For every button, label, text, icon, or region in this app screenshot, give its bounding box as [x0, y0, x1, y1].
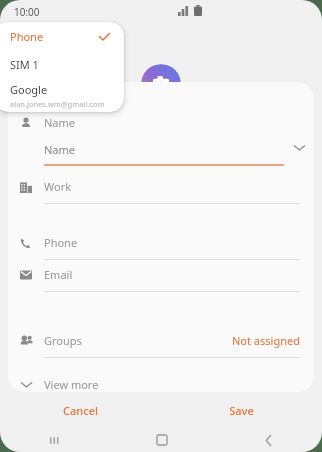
button[interactable]: Save: [161, 398, 322, 422]
staticText: Work: [44, 179, 72, 194]
button[interactable]: Home: [108, 428, 215, 452]
button[interactable]: View more: [8, 377, 314, 392]
staticText: Cancel: [63, 403, 98, 418]
staticText: Name: [44, 115, 76, 130]
button[interactable]: Email: [8, 267, 314, 297]
button[interactable]: Back: [215, 428, 322, 452]
button[interactable]: SIM 1: [0, 50, 124, 78]
staticText: Not assigned: [232, 333, 300, 348]
other: Expand name fields: [294, 144, 305, 151]
staticText: Google: [10, 82, 48, 97]
staticText: Groups: [44, 333, 82, 348]
button[interactable]: Google: [0, 78, 124, 112]
button[interactable]: Work: [8, 179, 314, 209]
staticText: Name: [44, 142, 76, 157]
button[interactable]: Name: [8, 137, 314, 169]
button[interactable]: Cancel: [0, 398, 161, 422]
staticText: Phone: [10, 29, 44, 44]
staticText: Email: [44, 267, 73, 282]
button[interactable]: Phone: [8, 235, 314, 265]
staticText: Save: [229, 403, 254, 418]
staticText: 10:00: [14, 5, 40, 19]
button[interactable]: Change contact photo: [141, 64, 181, 104]
staticText: alan.jones.wm@gmail.com: [10, 99, 105, 109]
button[interactable]: Groups: [8, 333, 314, 363]
button[interactable]: Recents: [0, 428, 108, 452]
staticText: Phone: [44, 235, 78, 250]
button[interactable]: Name: [8, 115, 314, 137]
button[interactable]: Phone: [0, 22, 124, 50]
staticText: SIM 1: [10, 57, 39, 72]
staticText: View more: [44, 377, 99, 392]
